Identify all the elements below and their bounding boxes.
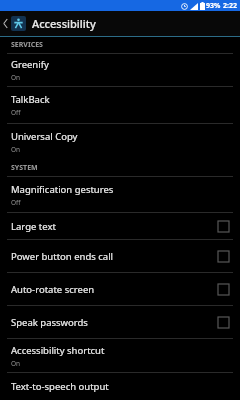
staticText: Accessibility shortcut bbox=[11, 344, 105, 357]
button[interactable]: Magnification gestures bbox=[0, 177, 240, 212]
button[interactable]: TalkBack bbox=[0, 87, 240, 123]
staticText: Off bbox=[11, 108, 21, 117]
button[interactable]: Power button ends call bbox=[0, 240, 240, 272]
staticText: Off bbox=[11, 198, 21, 207]
staticText: On bbox=[11, 73, 21, 82]
other: Power button ends call checkbox, uncheck… bbox=[218, 251, 229, 262]
button[interactable]: Large text bbox=[0, 213, 240, 239]
staticText: Accessibility bbox=[32, 16, 96, 31]
staticText: Auto-rotate screen bbox=[11, 283, 218, 296]
other: Large text checkbox, unchecked bbox=[218, 221, 229, 232]
button[interactable]: Greenify bbox=[0, 54, 240, 86]
staticText: Text-to-speech output bbox=[11, 380, 109, 393]
staticText: Speak passwords bbox=[11, 316, 218, 329]
button[interactable]: Universal Copy bbox=[0, 124, 240, 160]
staticText: SYSTEM bbox=[11, 163, 38, 173]
staticText: 2:22 bbox=[223, 1, 237, 11]
staticText: On bbox=[11, 359, 21, 368]
staticText: SERVICES bbox=[11, 40, 43, 50]
button[interactable]: Text-to-speech output bbox=[0, 373, 240, 400]
staticText: On bbox=[11, 145, 21, 154]
staticText: Large text bbox=[11, 220, 218, 233]
other: Speak passwords checkbox, unchecked bbox=[218, 317, 229, 328]
staticText: TalkBack bbox=[11, 93, 50, 106]
button[interactable]: Navigate up, Accessibility bbox=[0, 11, 240, 36]
staticText: Universal Copy bbox=[11, 130, 78, 143]
button[interactable]: Auto-rotate screen bbox=[0, 273, 240, 305]
staticText: Power button ends call bbox=[11, 250, 218, 263]
staticText: 93% bbox=[206, 1, 221, 11]
staticText: Magnification gestures bbox=[11, 183, 114, 196]
button[interactable]: Speak passwords bbox=[0, 306, 240, 338]
staticText: Greenify bbox=[11, 58, 49, 71]
other: Auto-rotate screen checkbox, unchecked bbox=[218, 284, 229, 295]
button[interactable]: Accessibility shortcut bbox=[0, 339, 240, 372]
